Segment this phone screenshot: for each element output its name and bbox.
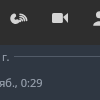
button[interactable]: Video call bbox=[46, 4, 74, 32]
button[interactable]: Contact info bbox=[85, 4, 100, 32]
staticText: г. bbox=[2, 49, 10, 64]
button[interactable]: Call bbox=[0, 0, 36, 36]
staticText: яб., 0:29 bbox=[0, 75, 43, 90]
